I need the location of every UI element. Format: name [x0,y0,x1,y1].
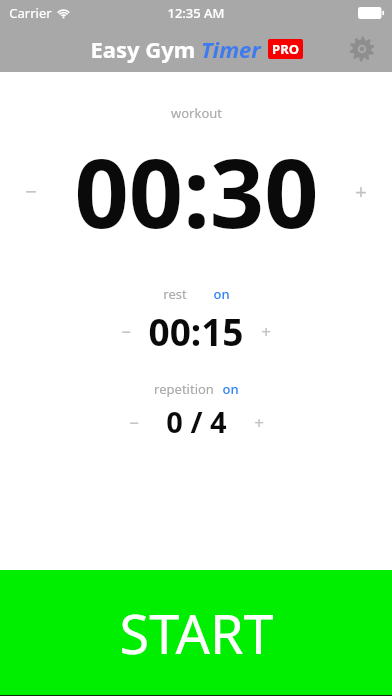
staticText: + [261,320,271,343]
staticText: − [121,320,131,343]
staticText: Carrier [9,4,52,22]
button[interactable]: Decrease repetitions [120,408,148,436]
button[interactable]: Settings [342,29,382,69]
staticText: − [129,411,139,434]
button[interactable]: 0 / 4 [166,402,227,441]
staticText: Easy Gym Timer [90,34,261,64]
button[interactable]: Decrease rest time [112,317,140,345]
staticText: + [355,178,367,205]
button[interactable]: 00:30 [74,126,319,255]
button[interactable]: 00:15 [148,306,244,356]
staticText: START [119,596,274,670]
staticText: 0 / 4 [166,402,227,441]
staticText: 12:35 AM [167,4,225,22]
staticText: + [254,411,264,434]
button[interactable]: START [0,570,392,696]
staticText: on [222,380,239,398]
staticText: 00:15 [148,306,244,356]
button[interactable]: Decrease workout time [16,176,46,206]
staticText: rest [163,285,187,303]
staticText: PRO [272,40,299,58]
button[interactable]: Increase rest time [252,317,280,345]
staticText: − [25,178,37,205]
button[interactable]: on [213,285,230,303]
button[interactable]: on [222,380,239,398]
button[interactable]: Increase workout time [346,176,376,206]
button[interactable]: Increase repetitions [245,408,273,436]
staticText: repetition [154,380,214,398]
staticText: on [213,285,230,303]
staticText: workout [171,104,222,122]
